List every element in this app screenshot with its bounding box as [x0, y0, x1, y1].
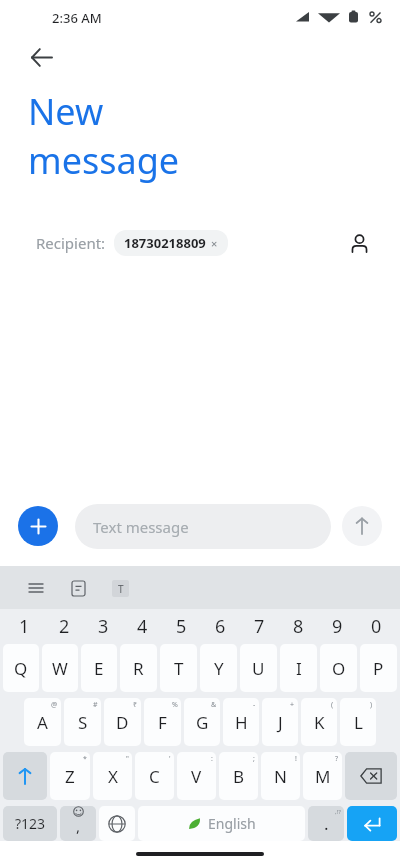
button[interactable]: N	[261, 752, 300, 800]
staticText: Recipient:	[36, 233, 106, 253]
staticText: )	[370, 700, 373, 710]
button[interactable]: 0	[357, 609, 396, 644]
staticText: W	[52, 657, 68, 680]
staticText: English	[208, 814, 256, 833]
staticText: B	[233, 765, 245, 788]
button[interactable]: G	[184, 698, 220, 746]
button[interactable]: Send	[342, 506, 382, 546]
button[interactable]: Clipboard	[62, 572, 94, 604]
button[interactable]: B	[219, 752, 258, 800]
button[interactable]: U	[240, 644, 277, 692]
button[interactable]: Menu	[20, 572, 52, 604]
staticText: 18730218809	[124, 234, 206, 252]
staticText: X	[108, 765, 118, 788]
staticText: O	[332, 657, 346, 680]
button[interactable]: Contacts	[340, 224, 378, 262]
staticText: 8	[293, 614, 304, 639]
button[interactable]: F	[144, 698, 181, 746]
button[interactable]: H	[223, 698, 259, 746]
button[interactable]: Text message	[75, 504, 331, 549]
button[interactable]: O	[320, 644, 357, 692]
button[interactable]: Shift	[3, 752, 47, 800]
staticText: Y	[214, 657, 224, 680]
staticText: #	[93, 700, 98, 710]
button[interactable]: 6	[201, 609, 240, 644]
staticText: '	[169, 754, 171, 764]
button[interactable]: A	[24, 698, 61, 746]
button[interactable]: E	[81, 644, 117, 692]
staticText: I	[296, 657, 302, 680]
button[interactable]: .	[308, 806, 344, 841]
staticText: 7	[254, 614, 265, 639]
staticText: 4	[137, 614, 148, 639]
button[interactable]: W	[42, 644, 78, 692]
button[interactable]: Q	[3, 644, 39, 692]
staticText: 9	[332, 614, 343, 639]
staticText: K	[314, 711, 325, 734]
staticText: A	[37, 711, 48, 734]
button[interactable]: C	[135, 752, 174, 800]
staticText: V	[191, 765, 202, 788]
staticText: @	[51, 700, 58, 710]
staticText: M	[315, 765, 331, 788]
button[interactable]: 1	[4, 609, 44, 644]
staticText: !	[295, 754, 297, 764]
button[interactable]: 8	[279, 609, 318, 644]
button[interactable]: P	[360, 644, 397, 692]
button[interactable]: 5	[162, 609, 201, 644]
staticText: &	[211, 700, 217, 710]
button[interactable]: Enter	[347, 806, 397, 841]
staticText: ;	[253, 754, 255, 764]
button[interactable]: Text editing	[104, 572, 136, 604]
staticText: C	[149, 765, 160, 788]
button[interactable]: I	[280, 644, 317, 692]
button[interactable]: 4	[123, 609, 162, 644]
button[interactable]: 2	[44, 609, 84, 644]
button[interactable]: V	[177, 752, 216, 800]
staticText: 3	[98, 614, 109, 639]
button[interactable]: 3	[84, 609, 123, 644]
staticText: ,	[76, 816, 81, 836]
staticText: T	[174, 657, 184, 680]
staticText: 6	[215, 614, 226, 639]
button[interactable]: Z	[50, 752, 90, 800]
button[interactable]: Emoji and comma	[60, 806, 96, 841]
button[interactable]: ?123	[3, 806, 57, 841]
staticText: D	[116, 711, 129, 734]
staticText: F	[158, 711, 167, 734]
staticText: "	[126, 754, 129, 764]
button[interactable]: Y	[200, 644, 237, 692]
button[interactable]: Backspace	[345, 752, 397, 800]
button[interactable]: R	[120, 644, 157, 692]
staticText: N	[274, 765, 287, 788]
button[interactable]: L	[340, 698, 376, 746]
button[interactable]: 9	[318, 609, 357, 644]
button[interactable]: English	[138, 806, 305, 841]
staticText: P	[373, 657, 384, 680]
button[interactable]: Change language	[99, 806, 135, 841]
button[interactable]: D	[104, 698, 141, 746]
button[interactable]: S	[64, 698, 101, 746]
button[interactable]: 7	[240, 609, 279, 644]
staticText: U	[252, 657, 265, 680]
button[interactable]: 18730218809	[114, 230, 228, 256]
button[interactable]: J	[262, 698, 298, 746]
staticText: 2:36 AM	[52, 9, 102, 27]
staticText: Q	[14, 657, 28, 680]
button[interactable]: Back	[20, 36, 62, 78]
staticText: *	[83, 754, 87, 764]
staticText: +	[290, 700, 295, 710]
staticText: S	[78, 711, 88, 734]
button[interactable]: X	[93, 752, 132, 800]
staticText: Z	[65, 765, 75, 788]
staticText: ₹	[133, 700, 138, 710]
staticText: E	[94, 657, 104, 680]
staticText: T	[118, 582, 124, 596]
staticText: -	[253, 700, 256, 710]
button[interactable]: K	[301, 698, 337, 746]
button[interactable]: Add attachment	[18, 506, 58, 546]
button[interactable]: M	[303, 752, 342, 800]
staticText: ,!?	[335, 808, 341, 816]
staticText: :	[211, 754, 213, 764]
button[interactable]: T	[160, 644, 197, 692]
